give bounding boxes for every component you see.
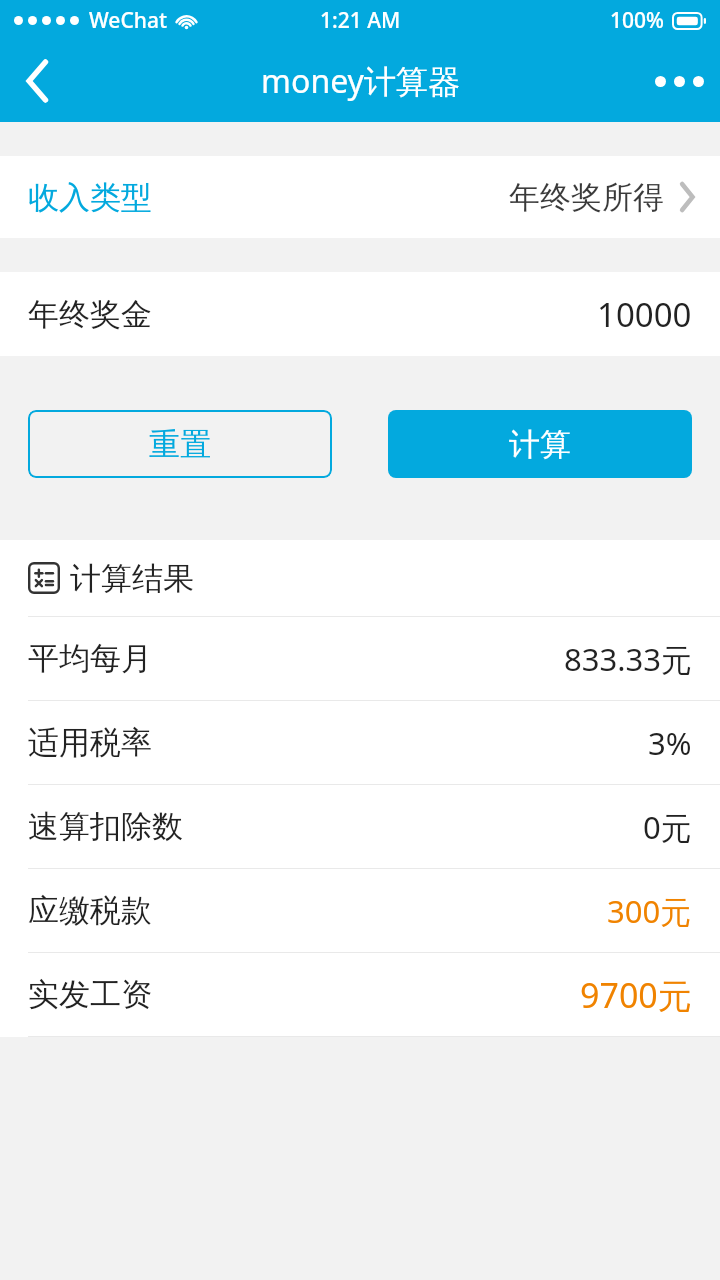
button[interactable]: Back: [0, 40, 74, 122]
staticText: 9700元: [580, 972, 692, 1018]
button[interactable]: 计算: [388, 410, 692, 478]
staticText: 833.33元: [564, 638, 692, 680]
staticText: 300元: [607, 890, 692, 932]
button[interactable]: 收入类型: [0, 156, 720, 238]
staticText: 100%: [610, 6, 664, 35]
button[interactable]: 应缴税款: [0, 869, 720, 952]
staticText: money计算器: [261, 59, 460, 103]
staticText: 重置: [149, 425, 211, 464]
button[interactable]: 实发工资: [0, 953, 720, 1036]
staticText: 应缴税款: [28, 891, 152, 930]
staticText: 适用税率: [28, 723, 152, 762]
staticText: 收入类型: [28, 178, 152, 217]
button[interactable]: 重置: [28, 410, 332, 478]
staticText: 3%: [648, 722, 692, 764]
staticText: 年终奖所得: [509, 178, 664, 217]
staticText: 计算: [509, 425, 571, 464]
button[interactable]: 年终奖金: [0, 272, 720, 356]
staticText: 速算扣除数: [28, 807, 183, 846]
button[interactable]: 适用税率: [0, 701, 720, 784]
staticText: 实发工资: [28, 975, 152, 1014]
button[interactable]: 平均每月: [0, 617, 720, 700]
button[interactable]: 速算扣除数: [0, 785, 720, 868]
staticText: 年终奖金: [28, 295, 152, 334]
staticText: 平均每月: [28, 639, 152, 678]
staticText: 计算结果: [70, 559, 194, 598]
staticText: 1:21 AM: [320, 6, 401, 35]
button[interactable]: More options: [638, 40, 720, 122]
staticText: 0元: [643, 806, 692, 848]
staticText: WeChat: [89, 6, 167, 35]
staticText: 10000: [597, 292, 692, 337]
